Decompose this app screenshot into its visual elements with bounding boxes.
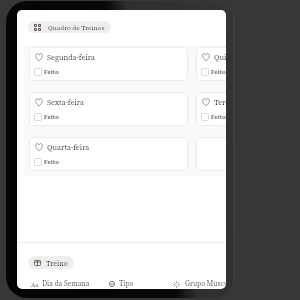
staticText: Grupo Muscular	[185, 279, 226, 289]
staticText: Quinta-feira	[214, 52, 226, 63]
staticText: Feito	[211, 68, 226, 76]
staticText: Quadro de Treinos	[48, 23, 105, 32]
button[interactable]	[196, 137, 226, 171]
staticText: Feito	[211, 113, 226, 121]
button[interactable]: Sexta-feira	[29, 92, 188, 126]
button[interactable]: Select property	[109, 279, 134, 289]
staticText: Sexta-feira	[47, 97, 84, 108]
staticText: Tipo	[119, 279, 134, 289]
staticText: Feito	[44, 68, 59, 76]
staticText: Treino	[46, 258, 68, 268]
button[interactable]: Quinta-feira	[196, 47, 226, 81]
button[interactable]: Segunda-feira	[29, 47, 188, 81]
button[interactable]: Terça-feira	[196, 92, 226, 126]
staticText: Segunda-feira	[47, 52, 95, 63]
staticText: Quarta-feira	[47, 142, 90, 153]
other: Table view	[34, 260, 41, 266]
staticText: Aa	[31, 280, 39, 289]
button[interactable]: Quarta-feira	[29, 137, 188, 171]
other: Board view	[34, 24, 41, 31]
button[interactable]: Board view	[28, 21, 111, 33]
button[interactable]: Aa	[31, 279, 90, 289]
staticText: Dia da Semana	[42, 279, 90, 289]
staticText: Feito	[44, 113, 59, 121]
button[interactable]: Multi-select property	[173, 279, 226, 289]
button[interactable]: Table view	[28, 256, 74, 269]
other: Multi-select property	[173, 281, 180, 288]
staticText: Feito	[44, 158, 59, 166]
other: Select property	[109, 281, 115, 287]
staticText: Terça-feira	[214, 97, 226, 108]
